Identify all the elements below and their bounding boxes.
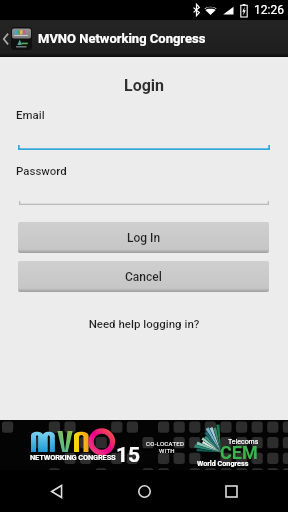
staticText: MVNO Networking Congress	[38, 31, 206, 46]
staticText: WITH	[159, 447, 175, 454]
staticText: NETWORKING CONGRESS	[30, 453, 116, 462]
button[interactable]: Home	[114, 470, 174, 512]
staticText: World Congress	[197, 459, 249, 467]
button[interactable]: Need help logging in?	[0, 317, 288, 330]
button[interactable]: Back	[27, 470, 87, 512]
staticText: Password	[16, 164, 67, 177]
staticText: 12:26	[254, 3, 284, 17]
button[interactable]: Cancel	[18, 261, 269, 292]
staticText: 15	[116, 443, 141, 468]
button[interactable]: Log In	[18, 222, 269, 253]
staticText: Login	[0, 76, 288, 95]
staticText: Cancel	[125, 270, 162, 284]
staticText: CO-LOCATED	[146, 440, 185, 447]
staticText: Email	[16, 108, 45, 121]
staticText: Telecoms	[228, 438, 259, 446]
staticText: CEM	[220, 442, 258, 463]
staticText: Log In	[127, 231, 161, 245]
button[interactable]: Recent apps	[201, 470, 261, 512]
button[interactable]: Navigate up	[0, 20, 36, 57]
button[interactable]: MVNO Networking Congress advertisement	[0, 420, 288, 470]
